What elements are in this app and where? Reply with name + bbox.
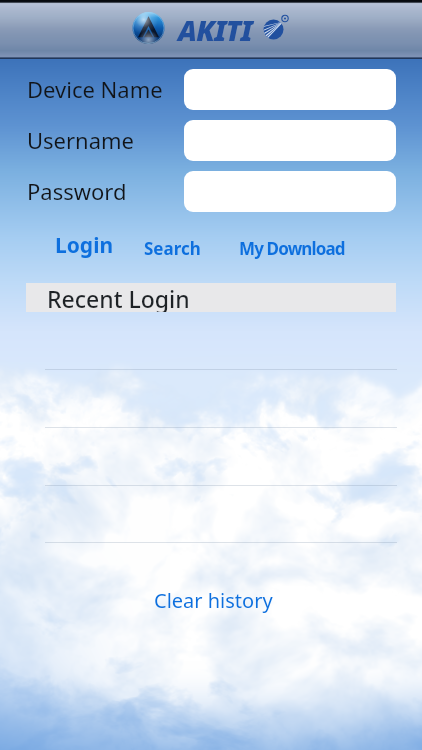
button[interactable]: Login [46,227,123,264]
staticText: Recent Login [47,283,190,312]
button[interactable] [184,171,396,212]
button[interactable] [184,69,396,110]
button[interactable]: Search [136,233,209,264]
button[interactable]: My Download [231,233,353,264]
button[interactable] [45,399,397,456]
button[interactable]: Clear history [144,583,283,618]
staticText: Username [27,125,135,155]
staticText: Password [27,176,127,206]
button[interactable] [45,457,397,514]
staticText: Device Name [27,74,163,104]
staticText: AKITI [178,11,252,49]
button[interactable] [184,120,396,161]
button[interactable] [45,514,397,571]
button[interactable] [45,341,397,398]
